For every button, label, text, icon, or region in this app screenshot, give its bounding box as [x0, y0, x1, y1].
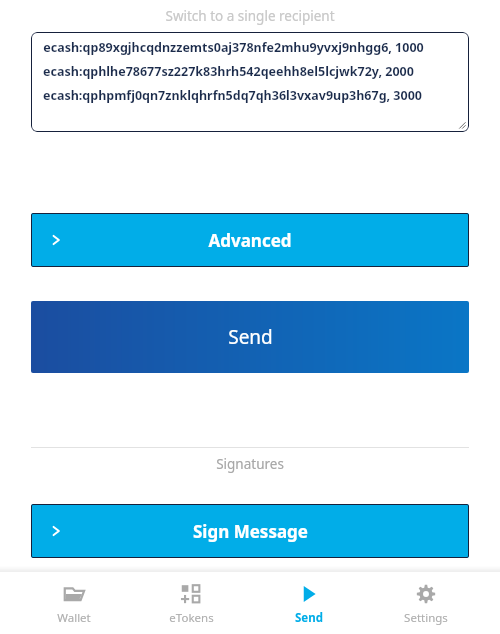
- button[interactable]: Settings: [383, 572, 469, 626]
- button[interactable]: Send: [266, 572, 352, 626]
- staticText: ecash:qp89xgjhcqdnzzemts0aj378nfe2mhu9yv…: [43, 39, 424, 56]
- button[interactable]: ecash:qp89xgjhcqdnzzemts0aj378nfe2mhu9yv…: [31, 32, 469, 132]
- staticText: eTokens: [169, 610, 214, 626]
- button[interactable]: Send: [31, 301, 469, 373]
- staticText: Sign Message: [193, 520, 308, 543]
- staticText: Signatures: [216, 455, 284, 473]
- staticText: Settings: [404, 610, 448, 626]
- staticText: Send: [295, 610, 323, 626]
- staticText: Advanced: [208, 229, 292, 252]
- button[interactable]: Sign Message: [31, 504, 469, 558]
- staticText: Wallet: [57, 610, 91, 626]
- staticText: Send: [228, 324, 273, 350]
- button[interactable]: Switch to a single recipient: [0, 7, 500, 25]
- button[interactable]: Advanced: [31, 213, 469, 267]
- button[interactable]: Wallet: [31, 572, 117, 626]
- staticText: Switch to a single recipient: [165, 7, 335, 25]
- staticText: ecash:qphlhe78677sz227k83hrh542qeehh8el5…: [43, 63, 414, 80]
- staticText: ecash:qphpmfj0qn7znklqhrfn5dq7qh36l3vxav…: [43, 87, 422, 104]
- button[interactable]: eTokens: [148, 572, 234, 626]
